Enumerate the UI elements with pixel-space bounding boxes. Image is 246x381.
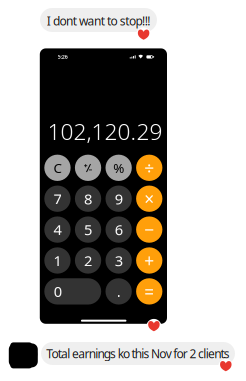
staticText: − bbox=[144, 218, 154, 241]
staticText: 4 bbox=[53, 220, 61, 239]
button[interactable]: 2 bbox=[75, 247, 101, 274]
button[interactable]: Total earnings ko this Nov for 2 clients bbox=[41, 342, 235, 365]
staticText: 5 bbox=[84, 220, 92, 239]
button[interactable]: . bbox=[105, 278, 132, 304]
button[interactable]: 4 bbox=[44, 216, 71, 243]
button[interactable]: − bbox=[136, 216, 162, 243]
button[interactable]: = bbox=[136, 278, 162, 304]
button[interactable]: × bbox=[136, 186, 162, 212]
staticText: 102,120.29 bbox=[47, 116, 162, 146]
staticText: ÷ bbox=[144, 156, 154, 179]
staticText: I dont want to stop!!! bbox=[47, 13, 150, 29]
button[interactable]: Plus minus bbox=[75, 155, 101, 181]
staticText: 9 bbox=[115, 189, 123, 208]
button[interactable]: 9 bbox=[105, 186, 132, 212]
staticText: 5:26 bbox=[58, 53, 68, 60]
button[interactable]: + bbox=[136, 247, 162, 274]
staticText: C bbox=[53, 159, 61, 177]
button[interactable]: 7 bbox=[44, 186, 71, 212]
staticText: 7 bbox=[53, 189, 61, 208]
staticText: 2 bbox=[84, 251, 92, 270]
staticText: 6 bbox=[115, 220, 123, 239]
staticText: = bbox=[144, 280, 154, 303]
staticText: + bbox=[144, 249, 154, 272]
button[interactable]: % bbox=[105, 155, 132, 181]
button[interactable]: 5 bbox=[75, 216, 101, 243]
button[interactable]: C bbox=[44, 155, 71, 181]
button[interactable]: 0 bbox=[44, 278, 101, 304]
button[interactable]: I dont want to stop!!! bbox=[40, 8, 157, 32]
staticText: % bbox=[113, 159, 124, 177]
staticText: 1 bbox=[53, 251, 61, 270]
button[interactable]: 3 bbox=[105, 247, 132, 274]
button[interactable]: 6 bbox=[105, 216, 132, 243]
button[interactable]: 1 bbox=[44, 247, 71, 274]
staticText: 3 bbox=[115, 251, 123, 270]
staticText: × bbox=[144, 187, 154, 210]
staticText: 8 bbox=[84, 189, 92, 208]
staticText: . bbox=[117, 282, 121, 301]
staticText: 0 bbox=[54, 282, 62, 301]
button[interactable]: 8 bbox=[75, 186, 101, 212]
button[interactable]: ÷ bbox=[136, 155, 162, 181]
staticText: Total earnings ko this Nov for 2 clients bbox=[46, 345, 230, 361]
